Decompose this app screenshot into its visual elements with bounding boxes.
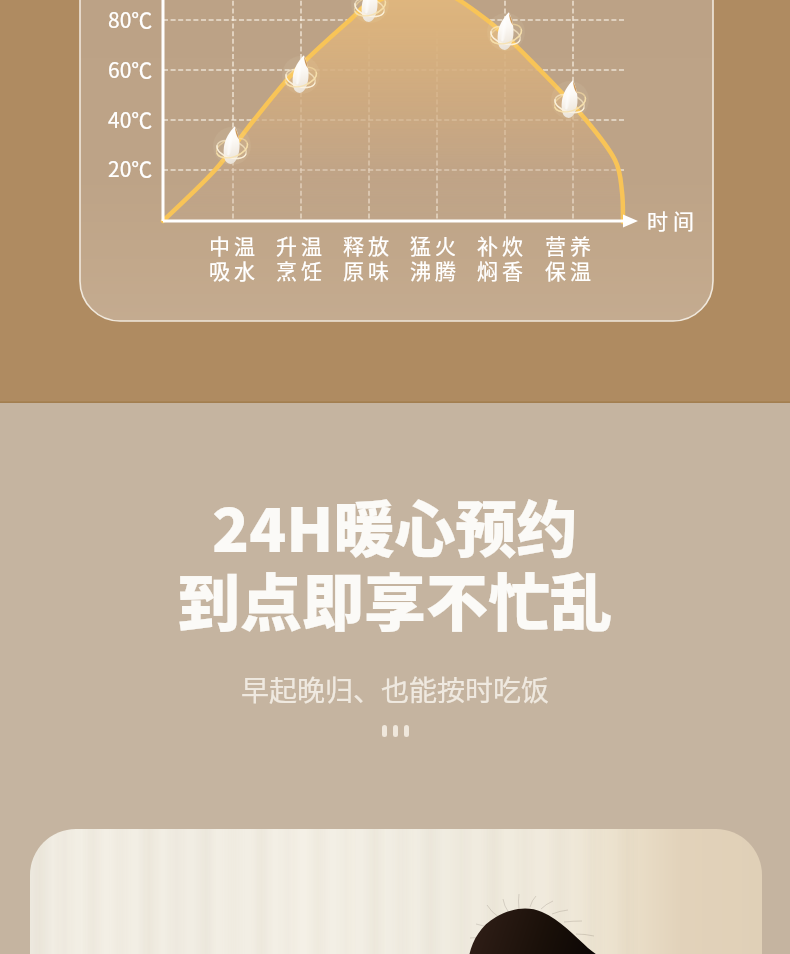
staticText: 释放	[343, 230, 393, 260]
staticText: 保温	[545, 255, 595, 285]
staticText: 20℃	[108, 153, 153, 183]
staticText: 80℃	[108, 4, 153, 34]
staticText: 猛火	[410, 230, 460, 260]
staticText: 早起晚归、也能按时吃饭	[241, 669, 550, 710]
staticText: 营养	[545, 230, 595, 260]
staticText: 24H暖心预约	[212, 481, 578, 569]
staticText: 吸水	[209, 255, 259, 285]
staticText: 焖香	[477, 255, 527, 285]
button[interactable]: 更多	[382, 725, 409, 737]
staticText: 时间	[647, 205, 699, 235]
staticText: 中温	[209, 230, 259, 260]
staticText: 40℃	[108, 104, 153, 134]
staticText: 升温	[276, 230, 326, 260]
staticText: 到点即享不忙乱	[178, 554, 613, 644]
staticText: 烹饪	[276, 255, 326, 285]
staticText: 原味	[343, 255, 393, 285]
staticText: 补炊	[477, 230, 527, 260]
staticText: 沸腾	[410, 255, 460, 285]
button[interactable]: 升温曲线图	[80, 0, 713, 321]
staticText: 60℃	[108, 54, 153, 84]
button[interactable]: 产品使用场景图	[30, 829, 762, 954]
